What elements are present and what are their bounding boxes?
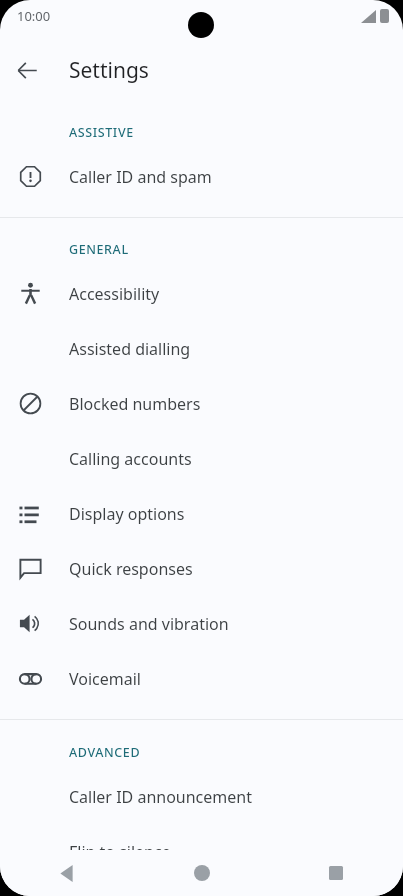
staticText: Blocked numbers — [69, 393, 201, 415]
staticText: Caller ID announcement — [69, 786, 252, 808]
staticText: Caller ID and spam — [69, 166, 212, 188]
staticText: Accessibility — [69, 283, 160, 305]
staticText: GENERAL — [69, 241, 129, 258]
staticText: Quick responses — [69, 558, 193, 580]
button[interactable]: Caller ID and spam — [0, 149, 403, 204]
staticText: Flip to silence — [69, 841, 171, 863]
staticText: ASSISTIVE — [69, 124, 134, 141]
staticText: Calling accounts — [69, 448, 192, 470]
button[interactable]: Back — [9, 52, 45, 88]
button[interactable]: Flip to silence — [0, 824, 403, 879]
button[interactable]: Back — [0, 850, 135, 896]
staticText: Assisted dialling — [69, 338, 191, 360]
button[interactable]: Caller ID announcement — [0, 769, 403, 824]
button[interactable]: Home — [135, 850, 269, 896]
staticText: Settings — [69, 56, 149, 85]
button[interactable]: Sounds and vibration — [0, 596, 403, 651]
button[interactable]: Display options — [0, 486, 403, 541]
button[interactable]: Voicemail — [0, 651, 403, 706]
staticText: ADVANCED — [69, 744, 141, 761]
button[interactable]: Accessibility — [0, 266, 403, 321]
button[interactable]: Quick responses — [0, 541, 403, 596]
staticText: 10:00 — [17, 7, 51, 25]
button[interactable]: Blocked numbers — [0, 376, 403, 431]
button[interactable]: Calling accounts — [0, 431, 403, 486]
staticText: Display options — [69, 503, 185, 525]
staticText: Voicemail — [69, 668, 141, 690]
staticText: Sounds and vibration — [69, 613, 229, 635]
button[interactable]: Assisted dialling — [0, 321, 403, 376]
button[interactable]: Recent apps — [269, 850, 403, 896]
